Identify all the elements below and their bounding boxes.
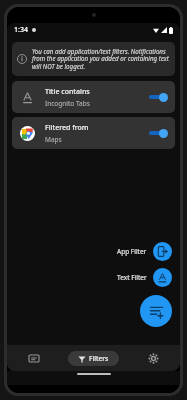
staticText: Filtered from [45,123,89,133]
button[interactable]: Filtered from [12,117,175,149]
staticText: 1:34 [14,25,28,35]
button[interactable]: Add filter [140,295,172,327]
button[interactable]: Toggle Title contains [148,91,168,103]
staticText: Filters [89,354,109,363]
button[interactable]: Title contains [12,81,175,113]
button[interactable]: Filters [68,351,119,366]
staticText: Maps [45,135,62,144]
button[interactable]: Settings [133,348,173,368]
staticText: You can add application/text filters. No… [32,47,170,71]
button[interactable]: Log [14,348,54,368]
staticText: App Filter [117,247,147,256]
button[interactable]: App Filter [153,242,172,261]
staticText: Incognito Tabs [45,99,90,108]
button[interactable]: You can add application/text filters. No… [12,42,175,76]
staticText: Text Filter [117,273,147,282]
button[interactable]: Toggle Filtered from [148,127,168,139]
button[interactable]: Text Filter [153,268,172,287]
staticText: Title contains [45,87,90,97]
